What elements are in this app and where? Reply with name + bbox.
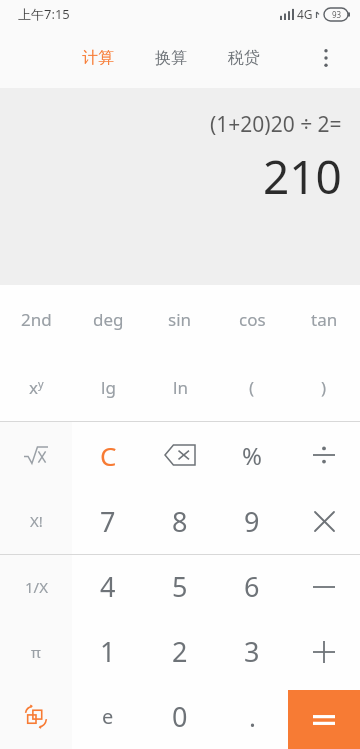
button[interactable] <box>288 422 360 488</box>
staticText: tan <box>311 308 338 331</box>
staticText: xy <box>29 376 44 399</box>
staticText: 6 <box>244 568 260 605</box>
staticText: 上午7:15 <box>18 5 70 23</box>
button[interactable] <box>288 619 360 684</box>
button[interactable]: 换算 <box>147 40 195 76</box>
staticText: 4G <box>297 6 313 22</box>
staticText: 7 <box>100 503 116 540</box>
staticText: lg <box>101 376 116 399</box>
staticText: 1/X <box>25 577 48 597</box>
staticText: 2 <box>172 633 188 670</box>
staticText: % <box>242 439 262 472</box>
button[interactable]: 计算 <box>74 40 122 76</box>
staticText: e <box>102 703 114 730</box>
button[interactable]: 0 <box>144 684 216 749</box>
button[interactable]: 1/X <box>0 554 72 619</box>
staticText: 9 <box>244 503 260 540</box>
staticText: 1 <box>100 633 116 670</box>
staticText: deg <box>93 308 124 331</box>
staticText: 8 <box>172 503 188 540</box>
button[interactable]: C <box>72 422 144 488</box>
button[interactable]: deg <box>72 285 144 353</box>
other: Unit converter <box>19 700 53 734</box>
staticText: 0 <box>172 698 188 735</box>
staticText: ln <box>173 376 188 399</box>
button[interactable]: 税贷 <box>220 40 268 76</box>
button[interactable]: 8 <box>144 488 216 554</box>
button[interactable] <box>0 422 72 488</box>
staticText: sin <box>168 308 192 331</box>
staticText: C <box>100 438 117 473</box>
staticText: X! <box>30 511 43 531</box>
button[interactable]: ( <box>216 353 288 421</box>
button[interactable]: X! <box>0 488 72 554</box>
staticText: 2nd <box>21 308 52 331</box>
button[interactable] <box>144 422 216 488</box>
button[interactable]: . <box>216 684 288 749</box>
staticText: 5 <box>172 568 188 605</box>
button[interactable]: cos <box>216 285 288 353</box>
staticText: ) <box>321 376 327 399</box>
button[interactable]: 4 <box>72 554 144 619</box>
button[interactable]: π <box>0 619 72 684</box>
button[interactable] <box>288 488 360 554</box>
staticText: . <box>249 699 256 734</box>
button[interactable] <box>288 554 360 619</box>
button[interactable]: ) <box>288 353 360 421</box>
button[interactable]: More options <box>308 40 344 76</box>
staticText: 4 <box>100 568 116 605</box>
button[interactable]: 7 <box>72 488 144 554</box>
staticText: 换算 <box>155 48 187 68</box>
button[interactable]: 2nd <box>0 285 72 353</box>
button[interactable]: 2 <box>144 619 216 684</box>
button[interactable]: 6 <box>216 554 288 619</box>
staticText: ( <box>249 376 255 399</box>
button[interactable]: 9 <box>216 488 288 554</box>
button[interactable]: e <box>72 684 144 749</box>
staticText: 93 <box>332 9 342 20</box>
staticText: 210 <box>263 145 342 208</box>
button[interactable]: 3 <box>216 619 288 684</box>
button[interactable]: 5 <box>144 554 216 619</box>
button[interactable]: lg <box>72 353 144 421</box>
button[interactable]: tan <box>288 285 360 353</box>
button[interactable]: xy <box>0 353 72 421</box>
button[interactable]: sin <box>144 285 216 353</box>
staticText: π <box>31 642 41 662</box>
staticText: 计算 <box>82 48 114 68</box>
button[interactable]: 1 <box>72 619 144 684</box>
staticText: (1+20)20 ÷ 2= <box>210 110 342 139</box>
staticText: 3 <box>244 633 260 670</box>
staticText: 税贷 <box>228 48 260 68</box>
button[interactable]: ln <box>144 353 216 421</box>
staticText: cos <box>239 308 266 331</box>
button[interactable]: % <box>216 422 288 488</box>
button[interactable] <box>288 690 360 749</box>
button[interactable]: Unit converter <box>0 684 72 749</box>
